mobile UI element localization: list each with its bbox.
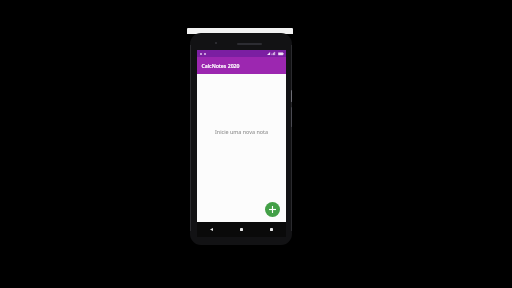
button[interactable]: Home: [226, 222, 256, 237]
button[interactable]: Recent apps: [256, 222, 286, 237]
staticText: Inicie uma nova nota: [215, 128, 268, 135]
button[interactable]: CalcNotes 2020: [197, 57, 286, 74]
button[interactable]: Nova nota: [265, 202, 280, 217]
button[interactable]: Back: [197, 222, 226, 237]
staticText: CalcNotes 2020: [201, 62, 240, 69]
